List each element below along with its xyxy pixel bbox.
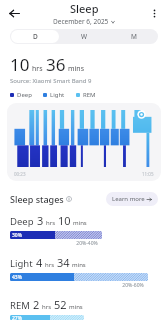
button[interactable]: M <box>110 30 157 43</box>
staticText: Deep <box>17 91 32 99</box>
staticText: mins <box>72 261 86 269</box>
staticText: 10 <box>58 213 71 228</box>
staticText: 43% <box>12 274 22 281</box>
staticText: 20%-60% <box>122 282 144 289</box>
staticText: mins <box>68 64 85 74</box>
staticText: 36 <box>46 53 66 76</box>
staticText: hrs <box>42 303 52 311</box>
staticText: 30% <box>12 232 22 239</box>
staticText: 52 <box>54 297 67 312</box>
staticText: 00:23 <box>14 171 26 177</box>
staticText: 2 <box>33 297 40 312</box>
button[interactable]: REM <box>0 297 168 320</box>
staticText: D <box>33 32 38 41</box>
button[interactable]: W <box>61 30 108 43</box>
staticText: 34 <box>57 255 70 270</box>
staticText: M <box>131 32 137 41</box>
staticText: 20%-40% <box>76 240 98 247</box>
staticText: Light <box>50 91 65 99</box>
button[interactable]: More options <box>144 3 164 23</box>
staticText: hrs <box>45 261 55 269</box>
button[interactable]: Learn more <box>106 192 158 206</box>
staticText: Source: Xiaomi Smart Band 9 <box>10 77 92 85</box>
staticText: mins <box>73 219 87 227</box>
staticText: Light <box>10 257 33 270</box>
button[interactable]: Deep <box>0 213 168 247</box>
staticText: 10 <box>10 53 30 76</box>
staticText: Learn more <box>112 195 145 203</box>
staticText: REM <box>83 91 96 99</box>
button[interactable]: December 6, 2025 <box>53 17 115 26</box>
staticText: 27% <box>12 315 22 320</box>
staticText: 11:05 <box>142 171 154 177</box>
button[interactable]: D <box>11 30 59 43</box>
staticText: Sleep stages <box>10 193 64 205</box>
staticText: hrs <box>32 64 43 74</box>
button[interactable]: Info about sleep stages <box>66 196 72 202</box>
staticText: W <box>81 32 88 41</box>
staticText: 4 <box>36 255 43 270</box>
staticText: December 6, 2025 <box>53 17 109 26</box>
staticText: Deep <box>10 215 34 228</box>
button[interactable]: Light <box>0 255 168 289</box>
staticText: 3 <box>37 213 44 228</box>
staticText: mins <box>69 303 83 311</box>
staticText: REM <box>10 299 30 312</box>
staticText: hrs <box>46 219 56 227</box>
button[interactable]: Back <box>4 3 24 23</box>
staticText: Sleep <box>70 1 99 16</box>
